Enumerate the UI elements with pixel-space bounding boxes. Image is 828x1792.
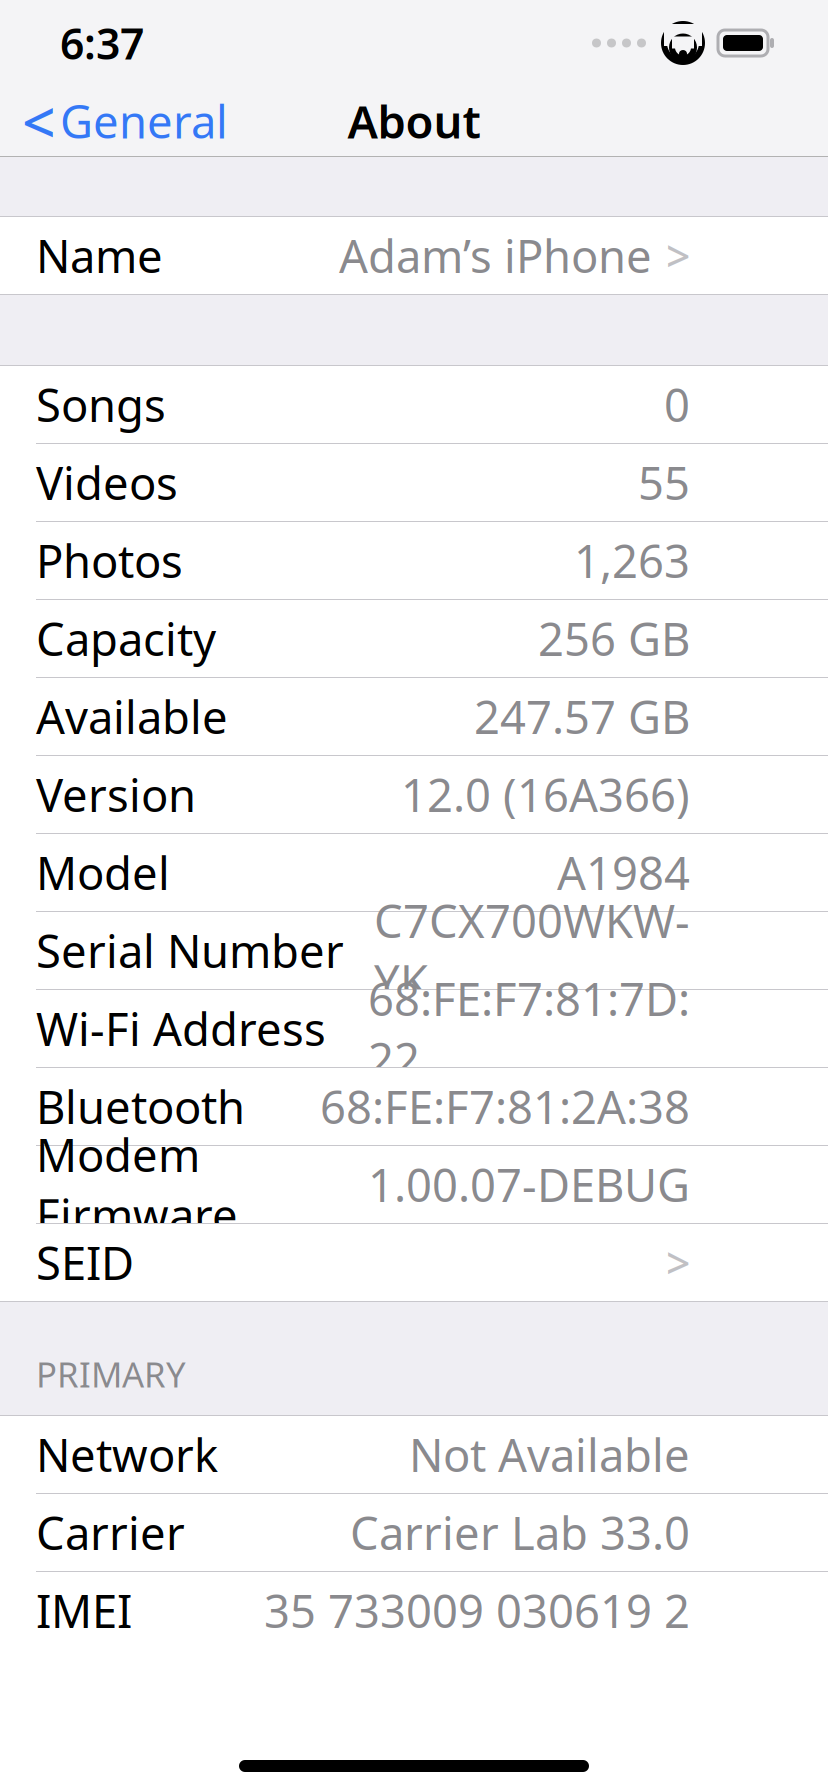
staticText: PRIMARY bbox=[36, 1351, 186, 1397]
staticText: Serial Number bbox=[36, 920, 344, 981]
staticText: > bbox=[666, 227, 690, 284]
staticText: Adam’s iPhone bbox=[339, 225, 652, 286]
staticText: 1,263 bbox=[574, 530, 690, 591]
staticText: Videos bbox=[36, 452, 178, 513]
staticText: 55 bbox=[638, 452, 690, 513]
staticText: 247.57 GB bbox=[474, 686, 690, 747]
staticText: Network bbox=[36, 1424, 218, 1485]
staticText: General bbox=[60, 91, 228, 151]
staticText: < bbox=[22, 82, 56, 160]
staticText: SEID bbox=[36, 1232, 134, 1293]
staticText: 68:FE:F7:81:7D:22 bbox=[368, 968, 690, 1089]
staticText: Not Available bbox=[409, 1424, 690, 1485]
staticText: Modem Firmware bbox=[36, 1124, 238, 1245]
staticText: Photos bbox=[36, 530, 183, 591]
button[interactable]: < bbox=[0, 89, 242, 153]
staticText: 68:FE:F7:81:2A:38 bbox=[320, 1076, 690, 1137]
staticText: Wi-Fi Address bbox=[36, 998, 326, 1059]
staticText: 35 733009 030619 2 bbox=[264, 1580, 690, 1641]
staticText: Name bbox=[36, 225, 163, 286]
staticText: > bbox=[666, 1234, 690, 1291]
staticText: Songs bbox=[36, 374, 166, 435]
staticText: Version bbox=[36, 764, 196, 825]
staticText: IMEI bbox=[36, 1580, 132, 1641]
staticText: Bluetooth bbox=[36, 1076, 245, 1137]
staticText: Model bbox=[36, 842, 170, 903]
staticText: Capacity bbox=[36, 608, 216, 669]
staticText: A1984 bbox=[557, 842, 690, 903]
staticText: 0 bbox=[664, 374, 690, 435]
staticText: 6:37 bbox=[60, 15, 144, 71]
staticText: 1.00.07-DEBUG bbox=[368, 1154, 690, 1215]
staticText: Carrier Lab 33.0 bbox=[350, 1502, 690, 1563]
staticText: 12.0 (16A366) bbox=[401, 764, 690, 825]
staticText: C7CX700WKWYK bbox=[374, 890, 690, 1011]
staticText: 256 GB bbox=[538, 608, 690, 669]
staticText: About bbox=[347, 91, 480, 151]
button[interactable]: Name bbox=[0, 217, 828, 294]
button[interactable]: SEID bbox=[0, 1224, 828, 1301]
staticText: Available bbox=[36, 686, 228, 747]
staticText: Carrier bbox=[36, 1502, 185, 1563]
